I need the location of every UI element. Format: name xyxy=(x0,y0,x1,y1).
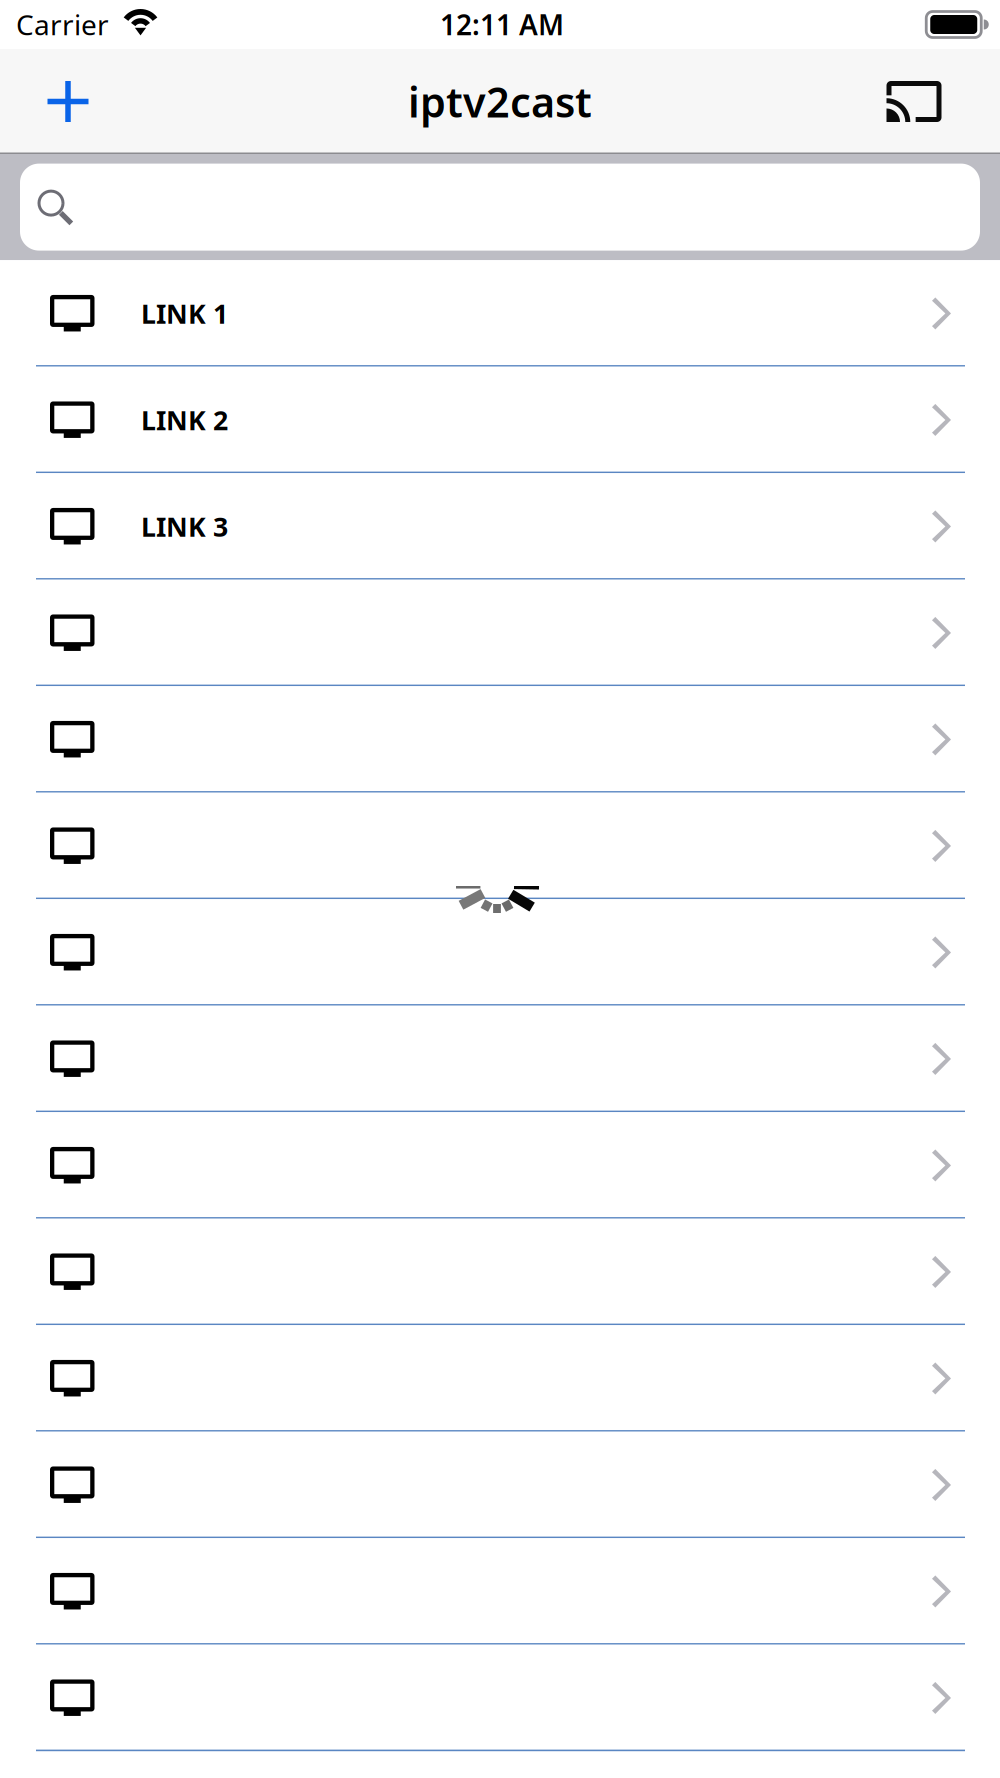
button[interactable]: Add channel xyxy=(22,51,114,151)
button[interactable]: Cast xyxy=(868,51,960,151)
staticText: 12:11 AM xyxy=(440,6,564,43)
button[interactable] xyxy=(0,1325,1000,1432)
staticText: iptv2cast xyxy=(408,74,592,129)
staticText: LINK 1 xyxy=(141,296,228,331)
staticText: Carrier xyxy=(16,6,109,43)
button[interactable] xyxy=(0,686,1000,793)
button[interactable] xyxy=(0,793,1000,899)
button[interactable]: LINK 2 xyxy=(0,367,1000,473)
button[interactable] xyxy=(0,1219,1000,1325)
button[interactable] xyxy=(0,1645,1000,1751)
button[interactable] xyxy=(0,1538,1000,1645)
button[interactable] xyxy=(0,1432,1000,1538)
staticText: LINK 3 xyxy=(141,509,228,544)
button[interactable] xyxy=(0,1006,1000,1112)
button[interactable] xyxy=(0,899,1000,1006)
button[interactable]: LINK 3 xyxy=(0,473,1000,580)
button[interactable]: Search xyxy=(20,164,980,251)
button[interactable] xyxy=(0,1112,1000,1219)
staticText: LINK 2 xyxy=(141,402,228,438)
button[interactable] xyxy=(0,580,1000,686)
button[interactable]: LINK 1 xyxy=(0,260,1000,367)
